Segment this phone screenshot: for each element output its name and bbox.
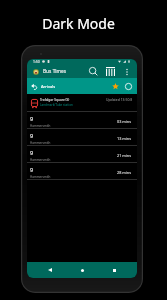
button[interactable]: Recents (105, 262, 123, 278)
staticText: Hammersmith (30, 158, 51, 162)
staticText: 9 (30, 132, 34, 139)
staticText: Hammersmith (30, 175, 51, 179)
button[interactable]: Departure board (104, 65, 117, 78)
staticText: Dark Mode (0, 14, 162, 33)
staticText: 13 mins (117, 136, 132, 141)
button[interactable]: 9 (27, 111, 137, 128)
staticText: 28 mins (117, 170, 132, 175)
button[interactable]: Refresh (122, 80, 135, 93)
button[interactable]: 9 (27, 162, 137, 179)
staticText: 21 mins (117, 153, 132, 158)
staticText: Updated 13:50:8 (106, 97, 133, 102)
staticText: 03 mins (117, 119, 132, 124)
staticText: 9 (30, 166, 34, 173)
button[interactable]: Back (27, 79, 41, 93)
staticText: Landmark/Tube station (40, 103, 73, 107)
staticText: 9 (30, 115, 34, 122)
button[interactable]: Home (73, 262, 91, 278)
button[interactable]: More options (120, 65, 133, 78)
staticText: Hammersmith (30, 124, 51, 128)
button[interactable]: Trafalgar Square (S) (27, 94, 137, 111)
staticText: Bus Times (43, 68, 67, 75)
button[interactable]: Search (87, 65, 100, 78)
button[interactable]: 9 (27, 128, 137, 145)
staticText: 9 (30, 149, 34, 156)
button[interactable]: Back (41, 262, 59, 278)
staticText: 1:50 (33, 59, 40, 64)
button[interactable]: 9 (27, 145, 137, 162)
button[interactable]: Favourite (109, 80, 122, 93)
staticText: Hammersmith (30, 141, 51, 145)
staticText: Trafalgar Square (S) (40, 98, 70, 102)
staticText: Arrivals (41, 84, 56, 89)
